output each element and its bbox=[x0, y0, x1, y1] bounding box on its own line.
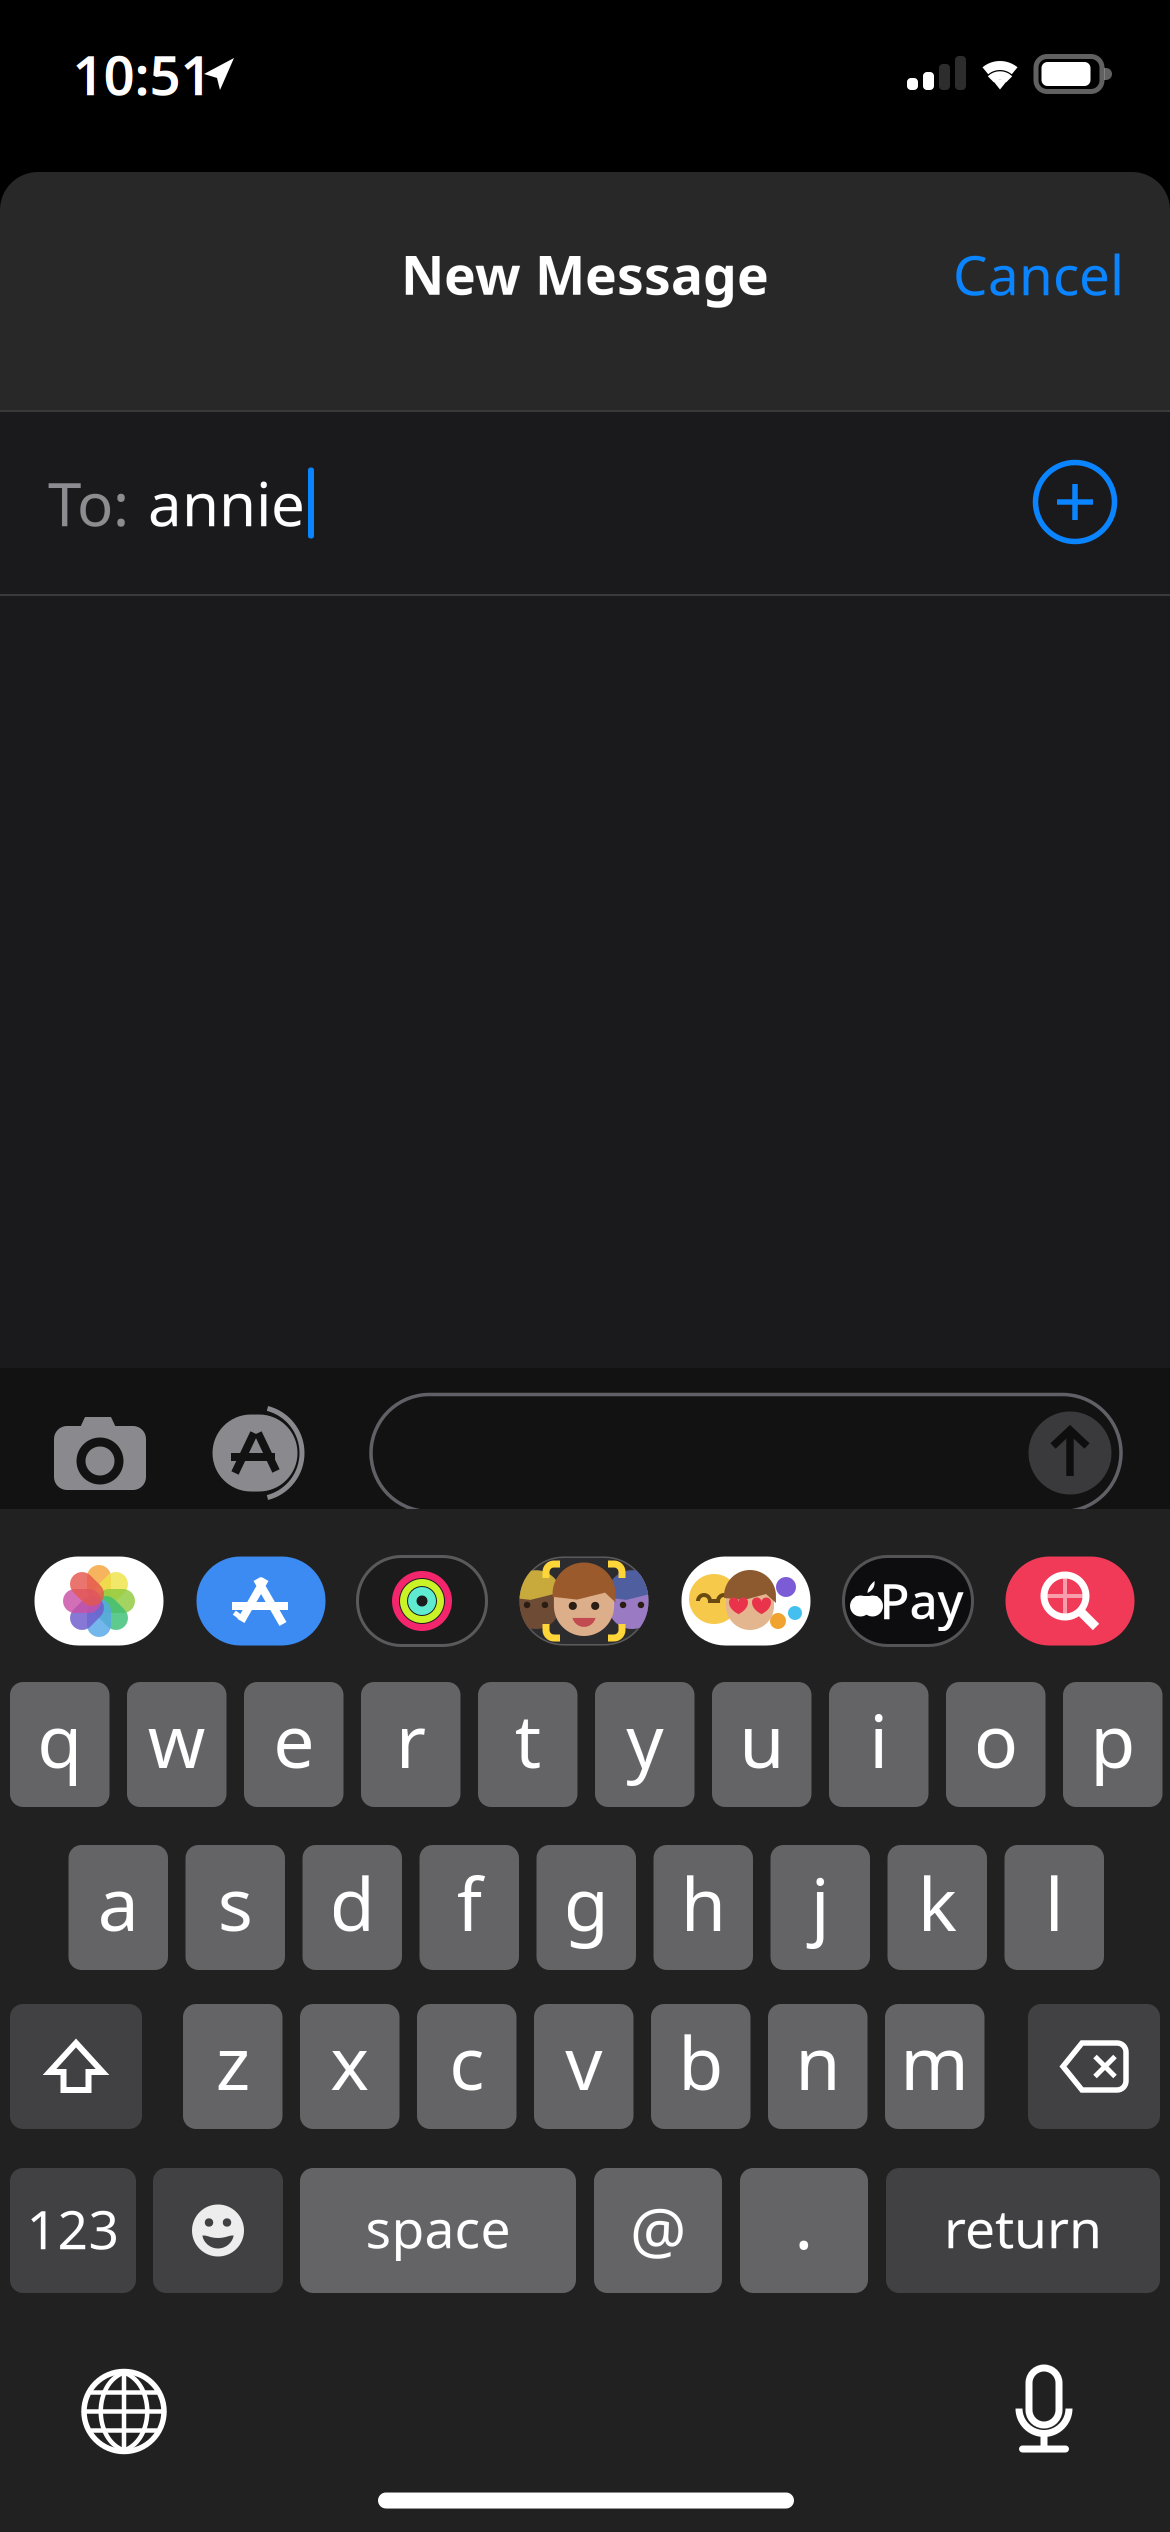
button[interactable]: u bbox=[712, 1682, 811, 1807]
staticText: w bbox=[148, 1691, 206, 1788]
button[interactable]: x bbox=[300, 2004, 399, 2129]
button[interactable]: Dictate bbox=[978, 2350, 1110, 2470]
staticText: To: bbox=[48, 463, 129, 543]
button[interactable]: return bbox=[886, 2168, 1160, 2293]
staticText: Cancel bbox=[953, 238, 1124, 310]
button[interactable]: space bbox=[300, 2168, 576, 2293]
button[interactable]: e bbox=[244, 1682, 343, 1807]
button[interactable]: Camera bbox=[34, 1393, 166, 1513]
button[interactable]: r bbox=[361, 1682, 460, 1807]
staticText: 10:51 bbox=[72, 38, 211, 110]
button[interactable]: w bbox=[127, 1682, 226, 1807]
button[interactable]: Delete bbox=[1028, 2004, 1160, 2129]
button[interactable]: o bbox=[946, 1682, 1045, 1807]
button[interactable]: m bbox=[885, 2004, 984, 2129]
button[interactable]: l bbox=[1004, 1845, 1104, 1970]
button[interactable]: k bbox=[887, 1845, 987, 1970]
staticText: t bbox=[515, 1691, 541, 1788]
staticText: f bbox=[457, 1854, 482, 1951]
button[interactable]: Emoji stickers bbox=[681, 1556, 810, 1645]
staticText: u bbox=[739, 1691, 784, 1788]
button[interactable]: c bbox=[417, 2004, 516, 2129]
staticText: c bbox=[449, 2013, 484, 2110]
staticText: b bbox=[678, 2013, 723, 2110]
staticText: o bbox=[974, 1691, 1018, 1788]
staticText: i bbox=[869, 1691, 888, 1788]
button[interactable]: d bbox=[302, 1845, 402, 1970]
staticText: l bbox=[1045, 1854, 1064, 1951]
button[interactable]: Memoji bbox=[519, 1556, 648, 1645]
staticText: g bbox=[564, 1854, 609, 1951]
button[interactable]: App Store bbox=[196, 1556, 325, 1645]
button[interactable]: Add contact bbox=[1020, 447, 1130, 557]
button[interactable]: q bbox=[10, 1682, 109, 1807]
button[interactable]: Emoji bbox=[153, 2168, 283, 2293]
button[interactable]: Cancel bbox=[904, 224, 1124, 324]
button[interactable]: i bbox=[829, 1682, 928, 1807]
button[interactable]: g bbox=[536, 1845, 636, 1970]
staticText: s bbox=[218, 1854, 253, 1951]
button[interactable]: y bbox=[595, 1682, 694, 1807]
staticText: return bbox=[944, 2192, 1102, 2263]
button[interactable]: App Store bbox=[194, 1393, 326, 1513]
button[interactable]: v bbox=[534, 2004, 633, 2129]
staticText: e bbox=[273, 1691, 314, 1788]
button[interactable]: n bbox=[768, 2004, 867, 2129]
button[interactable]: 123 bbox=[10, 2168, 136, 2293]
button[interactable]: Fitness bbox=[357, 1556, 486, 1645]
button[interactable]: f bbox=[419, 1845, 519, 1970]
staticText: space bbox=[365, 2192, 510, 2263]
staticText: v bbox=[565, 2013, 602, 2110]
button[interactable]: b bbox=[651, 2004, 750, 2129]
staticText: h bbox=[681, 1854, 726, 1951]
button[interactable]: . bbox=[740, 2168, 868, 2293]
button[interactable]: Send bbox=[1020, 1403, 1120, 1503]
staticText: a bbox=[98, 1854, 139, 1951]
button[interactable]: h bbox=[653, 1845, 753, 1970]
button[interactable]: Images bbox=[1005, 1556, 1134, 1645]
staticText: x bbox=[330, 2013, 369, 2110]
button[interactable]: j bbox=[770, 1845, 870, 1970]
staticText: d bbox=[330, 1854, 375, 1951]
button[interactable]: @ bbox=[594, 2168, 722, 2293]
button[interactable]: Apple Pay bbox=[843, 1556, 972, 1645]
staticText: z bbox=[216, 2013, 250, 2110]
staticText: Pay bbox=[879, 1567, 963, 1633]
button[interactable]: p bbox=[1063, 1682, 1162, 1807]
button[interactable]: Next keyboard bbox=[58, 2351, 190, 2471]
staticText: r bbox=[396, 1691, 426, 1788]
button[interactable]: s bbox=[185, 1845, 285, 1970]
button[interactable]: Photos bbox=[34, 1556, 163, 1645]
staticText: annie bbox=[148, 463, 305, 543]
staticText: New Message bbox=[401, 239, 769, 309]
staticText: p bbox=[1090, 1691, 1135, 1788]
staticText: q bbox=[37, 1691, 82, 1788]
staticText: j bbox=[811, 1854, 830, 1951]
staticText: @ bbox=[630, 2187, 686, 2270]
button[interactable]: Shift bbox=[10, 2004, 142, 2129]
staticText: m bbox=[900, 2013, 969, 2110]
staticText: k bbox=[918, 1854, 957, 1951]
staticText: n bbox=[795, 2013, 840, 2110]
staticText: y bbox=[626, 1691, 663, 1788]
button[interactable]: a bbox=[68, 1845, 168, 1970]
staticText: 123 bbox=[26, 2193, 119, 2264]
button[interactable]: z bbox=[183, 2004, 282, 2129]
staticText: . bbox=[794, 2176, 813, 2269]
button[interactable]: t bbox=[478, 1682, 577, 1807]
